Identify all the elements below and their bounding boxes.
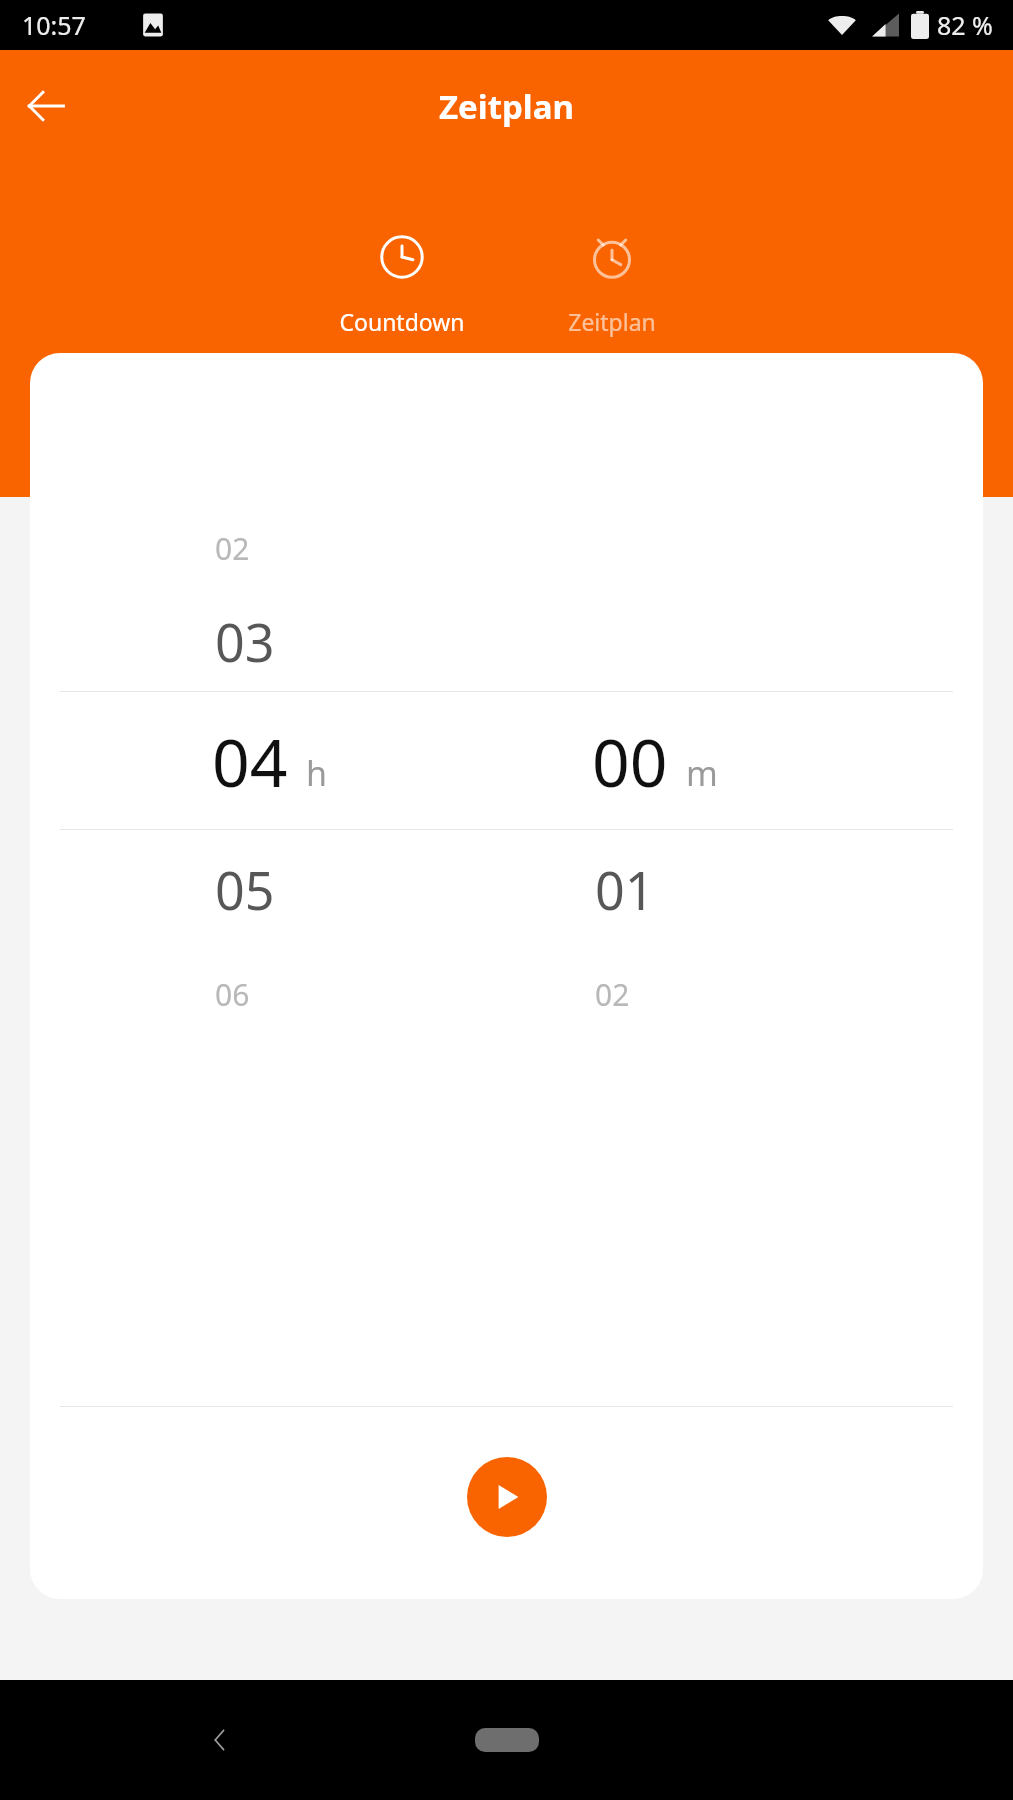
staticText: 82 % xyxy=(937,8,993,42)
staticText: 06 xyxy=(215,974,250,1015)
staticText: m xyxy=(686,750,718,796)
staticText: Countdown xyxy=(339,306,465,337)
button[interactable]: Countdown xyxy=(321,230,483,341)
staticText: 02 xyxy=(595,974,630,1015)
button[interactable]: Home xyxy=(445,1680,569,1800)
button[interactable]: 06 xyxy=(30,948,983,1040)
button[interactable]: 02 xyxy=(30,505,983,591)
staticText: 00 xyxy=(592,716,668,806)
staticText: 03 xyxy=(215,606,275,677)
staticText: 02 xyxy=(215,528,250,569)
button[interactable]: 04 xyxy=(212,716,328,806)
staticText: Zeitplan xyxy=(568,306,656,337)
button[interactable]: 05 xyxy=(30,830,983,948)
button[interactable]: 00 xyxy=(592,716,718,806)
button[interactable]: 03 xyxy=(30,591,983,691)
staticText: 10:57 xyxy=(22,8,86,42)
staticText: 05 xyxy=(215,854,275,925)
button[interactable]: Zeitplan xyxy=(531,230,693,341)
staticText: h xyxy=(306,750,328,796)
button[interactable]: Back xyxy=(158,1680,282,1800)
staticText: Zeitplan xyxy=(439,84,574,129)
staticText: 04 xyxy=(212,716,288,806)
button[interactable]: Start xyxy=(467,1457,547,1537)
button[interactable]: Back xyxy=(10,70,82,142)
staticText: 01 xyxy=(595,854,655,925)
